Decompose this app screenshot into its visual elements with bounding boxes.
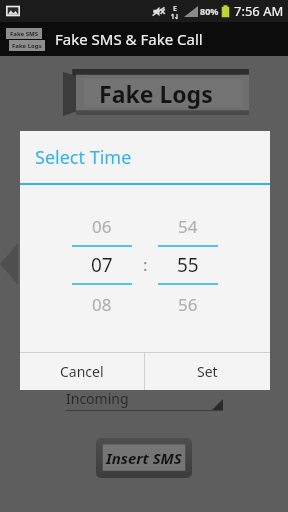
button[interactable]: Hour [72,211,132,319]
staticText: Select Time [35,145,132,170]
staticText: : [143,253,148,276]
staticText: 7:56 AM [234,2,284,20]
button[interactable]: Insert SMS [96,438,192,478]
staticText: E [173,4,177,14]
staticText: 56 [178,293,198,316]
staticText: 07 [91,252,113,278]
staticText: Fake SMS & Fake Call [55,29,203,49]
staticText: Fake SMS [10,30,39,38]
staticText: Insert SMS [106,448,182,468]
staticText: Cancel [60,362,104,381]
button[interactable]: Incoming [66,386,223,411]
button[interactable]: Fake Logs [63,69,249,117]
button[interactable]: Minute [158,211,218,319]
staticText: 06 [92,215,112,238]
staticText: Fake Logs [12,42,42,50]
staticText: 08 [92,293,112,316]
button[interactable]: Fake SMS [0,22,288,56]
button[interactable]: Previous [0,243,18,285]
staticText: 80% [200,5,219,17]
staticText: 55 [177,252,199,278]
staticText: Set [197,362,218,381]
staticText: Fake Logs [99,78,213,109]
staticText: Call Duration (in sec) [66,361,211,381]
button[interactable]: Set [145,353,270,390]
staticText: 54 [178,215,198,238]
staticText: Incoming [66,389,129,408]
button[interactable]: Cancel [20,353,144,390]
